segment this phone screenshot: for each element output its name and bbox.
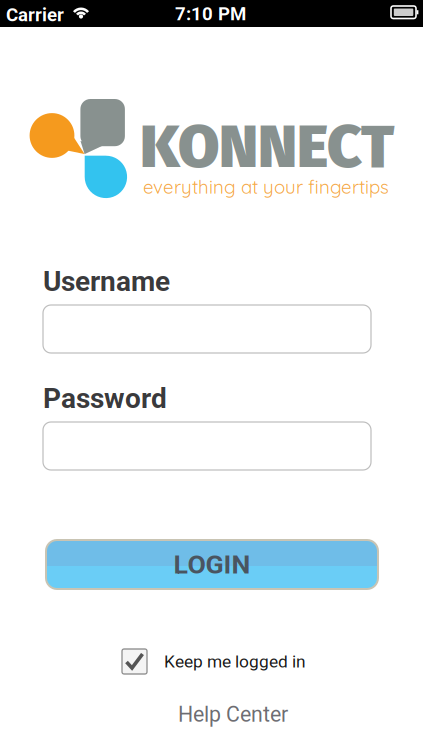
staticText: Carrier xyxy=(6,4,64,26)
staticText: Help Center xyxy=(178,702,288,727)
staticText: Password xyxy=(43,382,167,415)
staticText: Username xyxy=(43,265,170,298)
staticText: 7:10 PM xyxy=(175,3,246,25)
button[interactable]: Help Center xyxy=(178,702,288,727)
staticText: KONNECT xyxy=(140,111,394,183)
button[interactable]: LOGIN xyxy=(45,539,379,590)
staticText: LOGIN xyxy=(173,549,250,580)
staticText: Keep me logged in xyxy=(164,651,306,672)
staticText: everything at your fingertips xyxy=(143,175,389,198)
button[interactable]: Keep me logged in xyxy=(122,649,306,674)
